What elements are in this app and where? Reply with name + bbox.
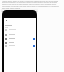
button[interactable] [4,44,36,47]
button[interactable] [4,41,36,44]
staticText: Lorem ipsum dolor sit amet consectetur a… [2,0,61,10]
button[interactable] [4,28,36,31]
button[interactable] [4,33,36,36]
button[interactable]: Back [5,19,8,22]
button[interactable] [4,37,36,40]
